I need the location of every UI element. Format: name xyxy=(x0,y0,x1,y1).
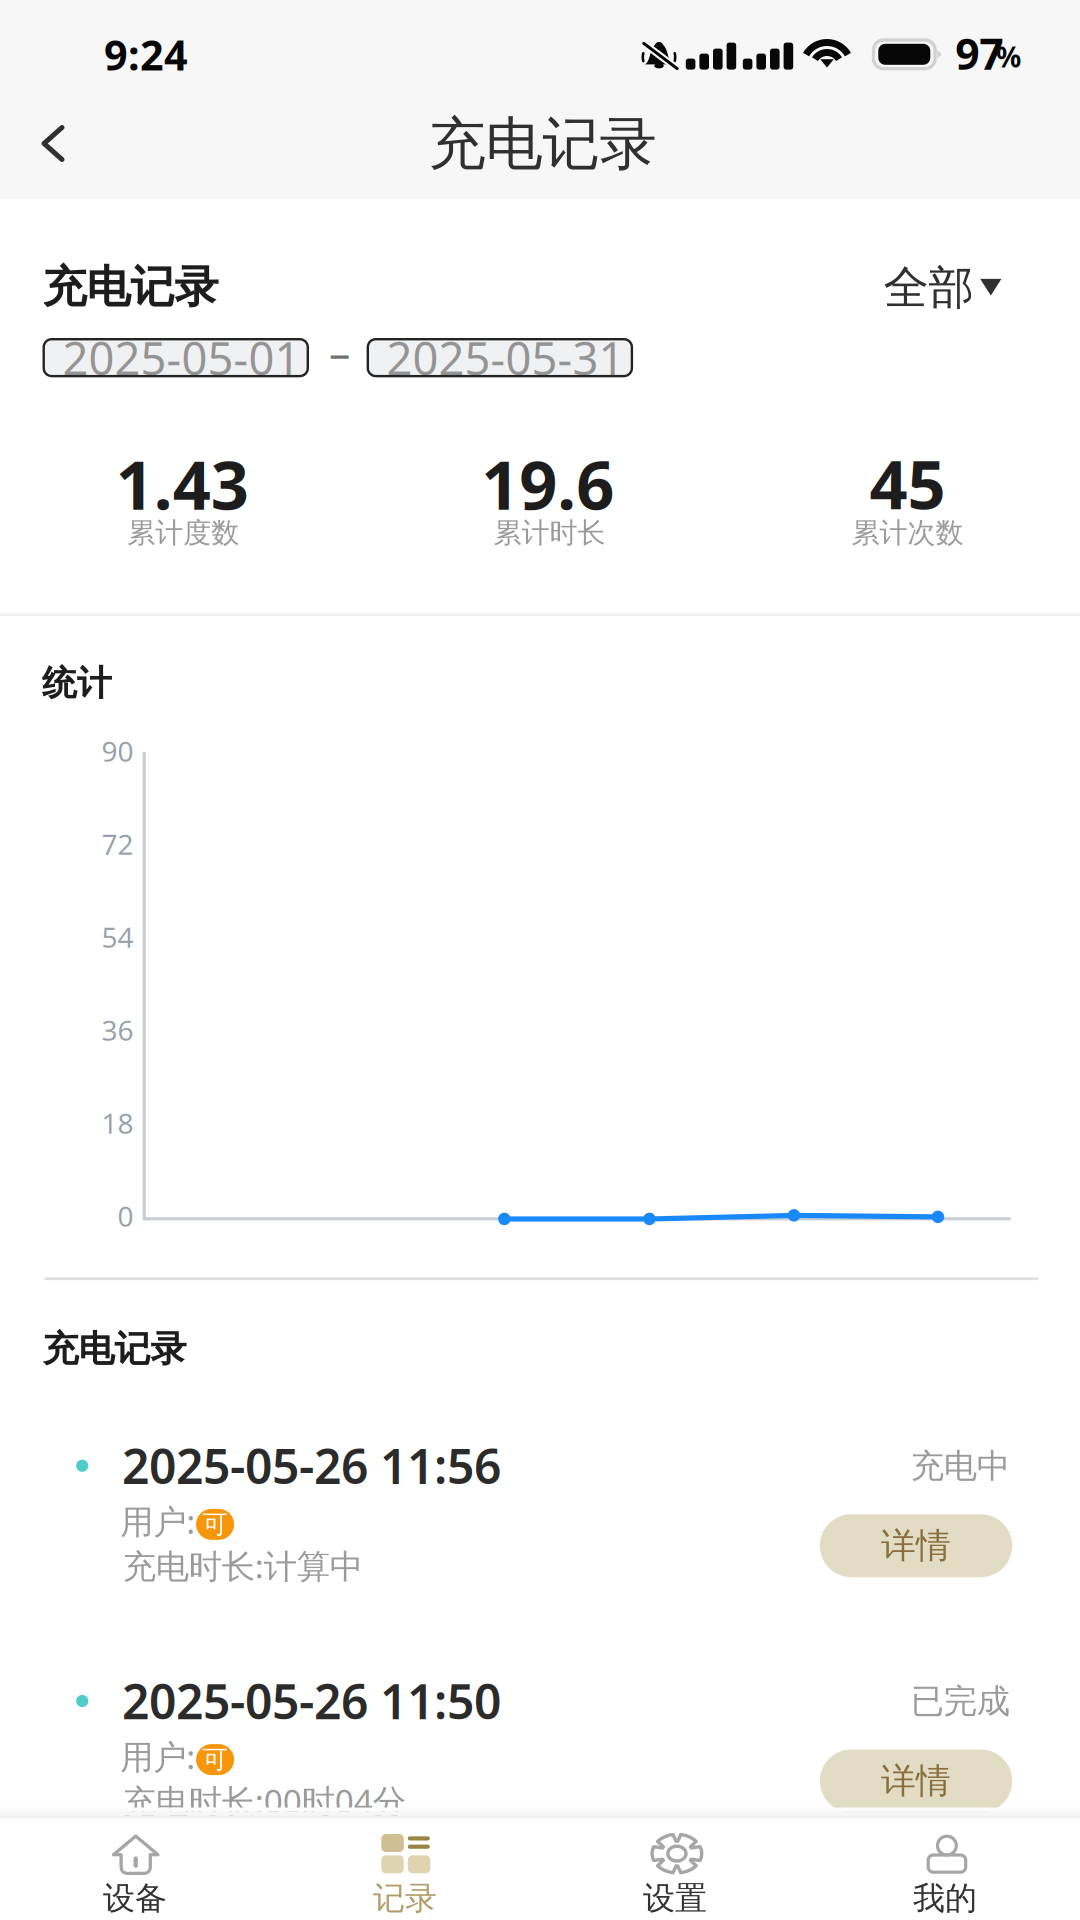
staticText: 全部 xyxy=(883,260,973,316)
staticText: % xyxy=(996,38,1021,75)
button[interactable]: 详情 xyxy=(820,1749,1012,1812)
button[interactable]: 记录 xyxy=(270,1818,540,1920)
staticText: 详情 xyxy=(881,1524,951,1567)
staticText: 充电时长:00时04分 xyxy=(123,1779,406,1823)
staticText: 充电记录 xyxy=(42,1327,186,1371)
staticText: 充电记录 xyxy=(42,260,218,314)
staticText: 2025-05-31 xyxy=(387,327,625,388)
staticText: 45 xyxy=(869,439,945,528)
staticText: 54 xyxy=(101,918,133,956)
staticText: 累计时长 xyxy=(493,516,605,550)
staticText: 充电中 xyxy=(911,1446,1010,1487)
button[interactable]: 设备 xyxy=(0,1818,270,1920)
staticText: 2025-05-26 11:56 xyxy=(122,1433,501,1497)
button[interactable]: 全部 xyxy=(883,243,1063,313)
staticText: 用户: xyxy=(120,1734,195,1778)
staticText: 记录 xyxy=(373,1879,437,1918)
staticText: 充电时长:计算中 xyxy=(123,1543,363,1588)
staticText: 统计 xyxy=(42,662,112,705)
staticText: 充电记录 xyxy=(428,109,656,179)
staticText: 2025-05-26 11:50 xyxy=(122,1669,501,1732)
staticText: 累计度数 xyxy=(127,516,239,550)
staticText: 0 xyxy=(117,1197,133,1235)
staticText: 97 xyxy=(955,25,1003,81)
staticText: 详情 xyxy=(881,1760,951,1802)
staticText: 设备 xyxy=(103,1879,167,1918)
staticText: 设置 xyxy=(643,1879,707,1918)
button[interactable]: 2025-05-31 xyxy=(368,339,632,376)
staticText: – xyxy=(329,324,350,381)
staticText: 已完成 xyxy=(911,1681,1010,1722)
staticText: 累计次数 xyxy=(851,516,963,550)
staticText: 36 xyxy=(101,1011,133,1049)
staticText: 1.43 xyxy=(116,440,249,528)
staticText: 2025-05-01 xyxy=(62,327,300,388)
staticText: 我的 xyxy=(913,1879,977,1918)
staticText: 可 xyxy=(203,1744,228,1775)
button[interactable]: 详情 xyxy=(820,1514,1012,1577)
staticText: 可 xyxy=(203,1509,228,1540)
button[interactable]: 我的 xyxy=(810,1818,1080,1920)
staticText: 用户: xyxy=(120,1499,195,1543)
button[interactable]: 设置 xyxy=(540,1818,810,1920)
staticText: 9:24 xyxy=(104,27,188,82)
staticText: 18 xyxy=(101,1104,133,1142)
staticText: 72 xyxy=(101,825,133,863)
staticText: 19.6 xyxy=(481,440,614,528)
button[interactable]: 2025-05-01 xyxy=(44,339,308,376)
button[interactable]: Back xyxy=(0,92,105,194)
staticText: 90 xyxy=(101,732,133,770)
